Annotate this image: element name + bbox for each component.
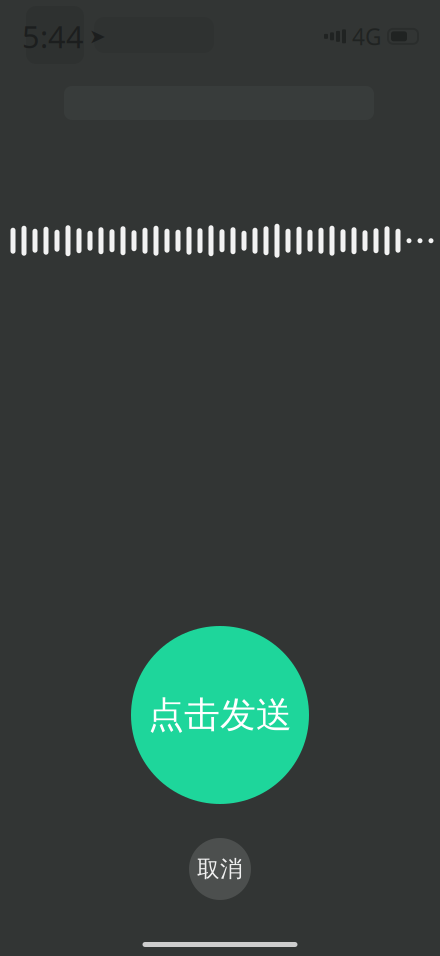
staticText: 取消 [197, 855, 243, 883]
staticText: 5:44 [22, 16, 84, 57]
button[interactable]: 取消 [189, 838, 251, 900]
button[interactable]: 点击发送 [131, 626, 309, 804]
staticText: 4G [352, 21, 382, 51]
staticText: ➤ [89, 25, 106, 48]
staticText: 点击发送 [148, 693, 292, 737]
